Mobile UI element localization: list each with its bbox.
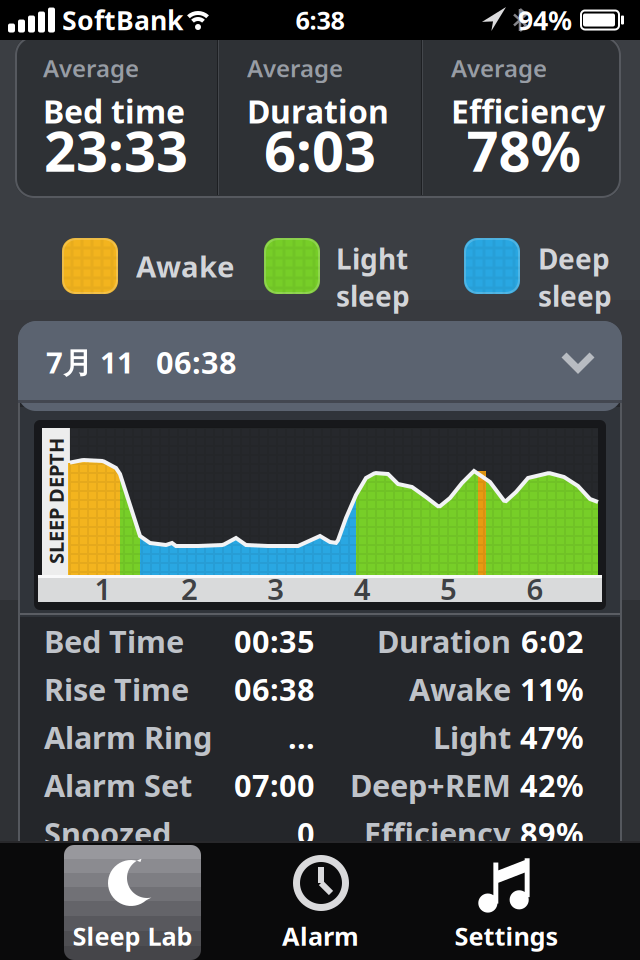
staticText: Snoozed [44, 813, 171, 853]
staticText: 7月 11 [46, 342, 134, 381]
staticText: 1 [94, 569, 111, 608]
staticText: Light [433, 717, 511, 757]
staticText: 00:35 [234, 621, 315, 661]
staticText: 0 [297, 813, 315, 853]
staticText: SLEEP DEPTH [0, 488, 119, 514]
staticText: Efficiency [451, 90, 605, 132]
staticText: 11% [520, 669, 584, 709]
staticText: Alarm [282, 919, 359, 953]
staticText: 42% [520, 765, 584, 805]
staticText: 6 [526, 569, 543, 608]
staticText: Alarm Ring [44, 717, 212, 757]
staticText: 07:00 [234, 765, 315, 805]
button[interactable]: 7月 11 [18, 321, 622, 403]
staticText: SoftBank [62, 2, 184, 38]
staticText: Average [247, 52, 343, 84]
staticText: Settings [454, 919, 558, 953]
button[interactable]: Alarm [252, 845, 389, 960]
staticText: Light [336, 240, 408, 277]
staticText: 6:02 [521, 621, 584, 661]
staticText: Deep+REM [350, 765, 511, 805]
staticText: 94% [518, 2, 572, 38]
staticText: 2 [181, 569, 198, 608]
staticText: 3 [267, 569, 284, 608]
staticText: 6:03 [264, 113, 376, 187]
staticText: Alarm Set [44, 765, 192, 805]
staticText: 06:38 [234, 669, 315, 709]
staticText: Efficiency [364, 813, 511, 853]
staticText: sleep [538, 277, 612, 314]
staticText: Deep [538, 240, 610, 277]
staticText: 89% [520, 813, 584, 853]
button[interactable]: Settings [438, 845, 575, 960]
staticText: Average [451, 52, 547, 84]
staticText: Duration [377, 621, 511, 661]
staticText: ... [288, 717, 315, 757]
staticText: Duration [247, 90, 389, 132]
staticText: Awake [409, 669, 511, 709]
staticText: Sleep Lab [72, 919, 192, 953]
staticText: 06:38 [156, 342, 237, 382]
staticText: 23:33 [44, 113, 188, 187]
staticText: Rise Time [44, 669, 189, 709]
staticText: 78% [466, 113, 581, 187]
staticText: 6:38 [295, 3, 344, 37]
button[interactable]: Sleep Lab [64, 845, 201, 960]
staticText: Bed Time [44, 621, 184, 661]
staticText: 47% [520, 717, 584, 757]
staticText: 4 [354, 569, 371, 608]
staticText: Average [43, 52, 139, 84]
staticText: sleep [336, 277, 410, 314]
staticText: Awake [136, 246, 235, 285]
staticText: 5 [440, 569, 457, 608]
staticText: Bed time [43, 90, 185, 132]
